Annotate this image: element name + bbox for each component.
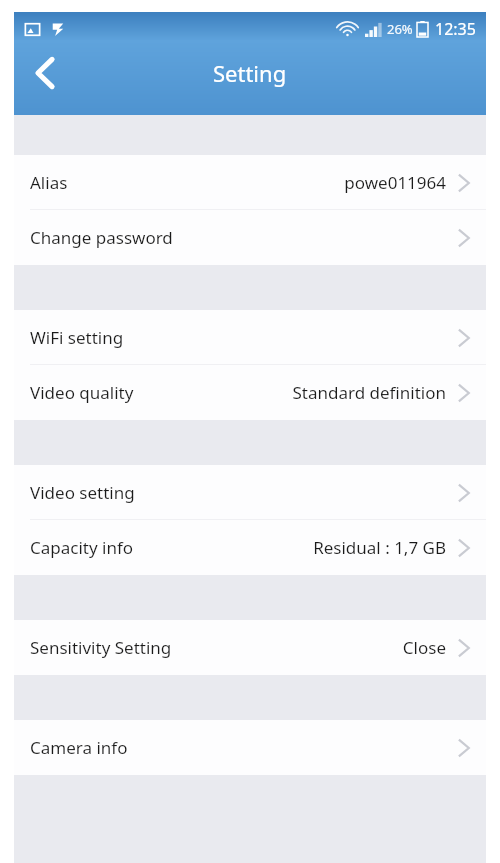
staticText: Close	[402, 636, 446, 659]
staticText: Setting	[213, 58, 287, 88]
button[interactable]: Sensitivity Setting	[14, 620, 486, 675]
button[interactable]: Video setting	[14, 465, 486, 520]
staticText: 26%	[387, 20, 413, 38]
staticText: Camera info	[30, 736, 128, 759]
staticText: Capacity info	[30, 536, 134, 559]
button[interactable]: Camera info	[14, 720, 486, 775]
button[interactable]: Alias	[14, 155, 486, 210]
button[interactable]: Capacity info	[14, 520, 486, 575]
button[interactable]: Video quality	[14, 365, 486, 420]
button[interactable]: Change password	[14, 210, 486, 265]
staticText: Change password	[30, 226, 173, 249]
staticText: Video quality	[30, 381, 134, 404]
staticText: Sensitivity Setting	[30, 636, 172, 659]
staticText: 12:35	[435, 18, 476, 40]
staticText: Alias	[30, 171, 68, 194]
button[interactable]: WiFi setting	[14, 310, 486, 365]
staticText: Residual : 1,7 GB	[313, 536, 446, 559]
staticText: Video setting	[30, 481, 135, 504]
button[interactable]: Back	[14, 42, 76, 104]
staticText: WiFi setting	[30, 326, 124, 349]
staticText: Standard definition	[292, 381, 446, 404]
staticText: powe011964	[344, 171, 446, 194]
